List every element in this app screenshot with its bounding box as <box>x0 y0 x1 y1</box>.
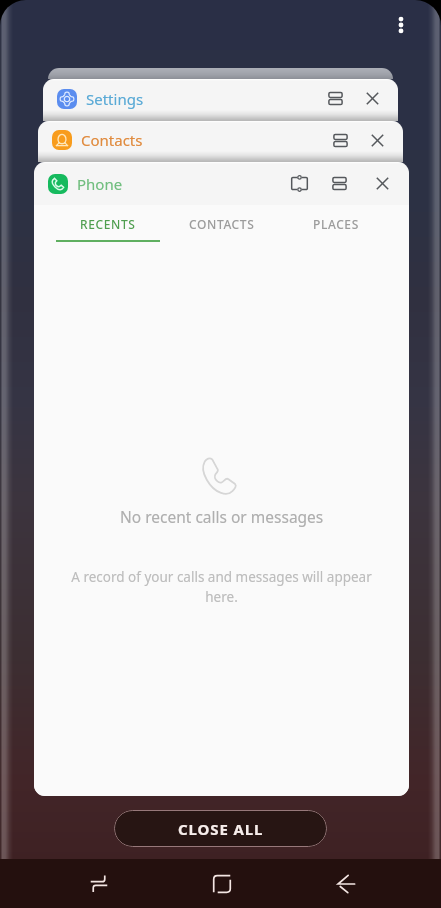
button[interactable]: PLACES <box>279 205 393 242</box>
button[interactable]: Contacts <box>38 121 403 162</box>
button[interactable]: Settings <box>43 79 398 121</box>
staticText: CONTACTS <box>189 216 255 232</box>
button[interactable]: Pop-up view <box>280 162 319 205</box>
button[interactable]: Recents <box>37 859 160 908</box>
button[interactable]: Close <box>354 79 390 118</box>
staticText: Phone <box>77 174 123 194</box>
button[interactable]: Home <box>160 859 284 908</box>
staticText: No recent calls or messages <box>120 506 324 527</box>
button[interactable]: Close <box>359 121 395 159</box>
staticText: A record of your calls and messages will… <box>70 568 373 606</box>
button[interactable]: RECENTS <box>50 205 165 242</box>
button[interactable]: Phone <box>34 162 409 205</box>
button[interactable]: CLOSE ALL <box>114 810 327 847</box>
staticText: Settings <box>86 89 144 109</box>
button[interactable]: More options <box>382 6 420 44</box>
staticText: PLACES <box>313 216 359 232</box>
button[interactable]: Back <box>284 859 408 908</box>
button[interactable]: Split screen <box>316 79 354 118</box>
staticText: Contacts <box>81 130 143 150</box>
button[interactable]: Close <box>363 162 401 205</box>
staticText: CLOSE ALL <box>178 819 264 839</box>
staticText: RECENTS <box>80 216 136 232</box>
button[interactable]: Split screen <box>321 121 359 159</box>
button[interactable]: CONTACTS <box>165 205 279 242</box>
button[interactable]: Split screen <box>319 162 360 205</box>
